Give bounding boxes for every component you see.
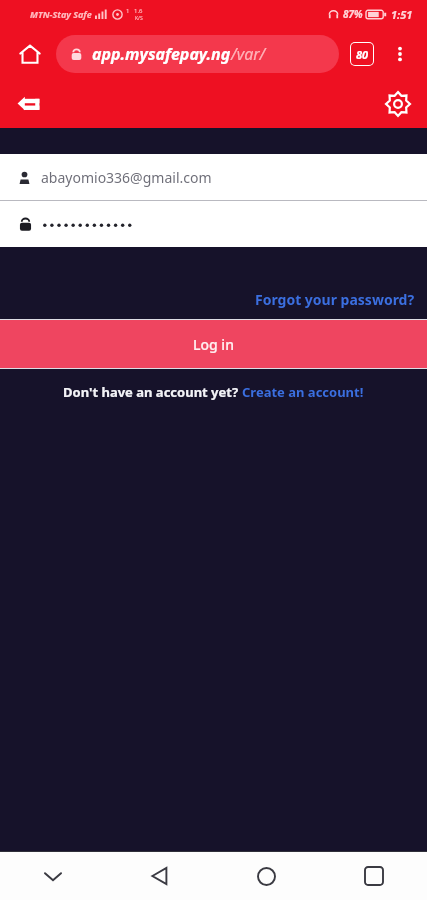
staticText: 1.6 [134, 7, 143, 15]
button[interactable]: Hide keyboard [0, 852, 106, 900]
button[interactable]: Log in [0, 320, 427, 368]
staticText: 80 [356, 47, 369, 62]
button[interactable]: app.mysafepay.ng [56, 35, 339, 73]
staticText: MTN-Stay Safe [30, 8, 92, 20]
staticText: app.mysafepay.ng [92, 43, 231, 65]
staticText: 87% [343, 7, 363, 21]
button[interactable]: Tabs, 80 open [345, 37, 379, 71]
staticText: Don't have an account yet? [63, 383, 242, 401]
button[interactable]: abayomio336@gmail.com [0, 154, 427, 200]
button[interactable]: Home [213, 852, 320, 900]
staticText: Forgot your password? [255, 290, 415, 309]
staticText: abayomio336@gmail.com [41, 168, 212, 187]
button[interactable]: More options [383, 37, 417, 71]
staticText: /var/ [231, 43, 266, 65]
button[interactable]: Home [10, 34, 50, 74]
staticText: 1 [126, 7, 130, 15]
button[interactable]: Back [10, 85, 48, 123]
button[interactable]: Recent apps [320, 852, 427, 900]
staticText: 1:51 [391, 7, 413, 22]
staticText: K/S [135, 15, 143, 22]
button[interactable]: Create an account! [242, 383, 364, 401]
button[interactable]: Forgot your password? [255, 290, 427, 319]
staticText: Create an account! [242, 383, 364, 401]
button[interactable]: Settings [379, 85, 417, 123]
staticText: Log in [193, 335, 234, 354]
button[interactable] [0, 201, 427, 247]
button[interactable]: Back [106, 852, 213, 900]
